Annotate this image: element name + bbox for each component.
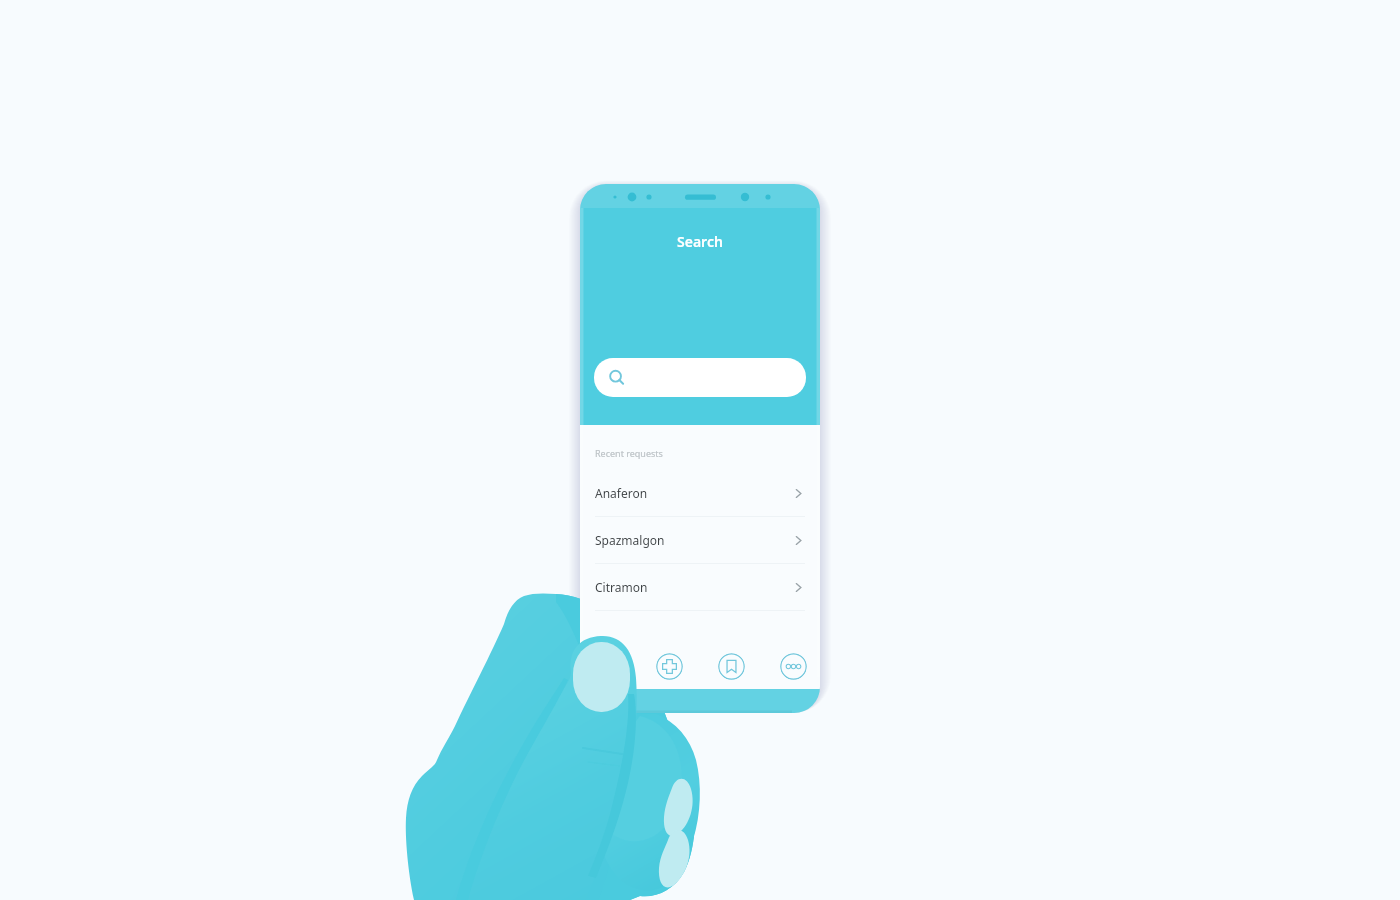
button[interactable]: Spazmalgon <box>580 517 820 563</box>
button[interactable]: Bookmarks <box>718 653 745 680</box>
staticText: Recent requests <box>595 447 663 459</box>
button[interactable]: Citramon <box>580 564 820 610</box>
button[interactable]: Add <box>656 653 683 680</box>
staticText: Spazmalgon <box>595 532 665 548</box>
button[interactable]: Search field <box>594 358 806 397</box>
button[interactable]: Anaferon <box>580 470 820 516</box>
button[interactable]: More options <box>780 653 807 680</box>
staticText: Anaferon <box>595 485 648 501</box>
staticText: Citramon <box>595 579 648 595</box>
staticText: Search <box>677 232 723 251</box>
